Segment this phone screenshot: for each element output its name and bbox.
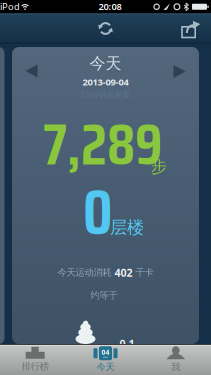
staticText: 0 bbox=[83, 164, 113, 261]
staticText: 2013-09-04 bbox=[82, 76, 128, 88]
button[interactable]: 后一天 bbox=[173, 65, 185, 78]
button[interactable]: 排行榜 bbox=[0, 344, 70, 375]
staticText: 7,289 bbox=[43, 99, 162, 190]
button[interactable]: 04 bbox=[70, 344, 141, 375]
button[interactable]: 前一天 bbox=[25, 64, 37, 77]
staticText: 层楼 bbox=[110, 217, 144, 238]
staticText: 步 bbox=[151, 157, 167, 177]
staticText: 0.1 bbox=[119, 336, 134, 351]
staticText: 10分钟前更新 bbox=[80, 89, 130, 100]
button[interactable]: 刷新 bbox=[98, 21, 113, 36]
button[interactable]: 我 bbox=[141, 344, 211, 375]
staticText: 约等于 bbox=[90, 290, 117, 301]
staticText: 今天 bbox=[89, 54, 121, 73]
staticText: 今天 bbox=[96, 361, 114, 373]
staticText: iPod bbox=[0, 0, 20, 13]
staticText: 千卡 bbox=[135, 267, 153, 278]
staticText: 402 bbox=[114, 265, 132, 280]
staticText: 今天运动消耗 bbox=[57, 267, 111, 278]
staticText: 04 bbox=[101, 348, 109, 357]
staticText: 排行榜 bbox=[22, 361, 49, 372]
button[interactable]: 分享 bbox=[180, 20, 200, 38]
staticText: 20:08 bbox=[98, 0, 121, 13]
staticText: 我 bbox=[171, 361, 180, 373]
